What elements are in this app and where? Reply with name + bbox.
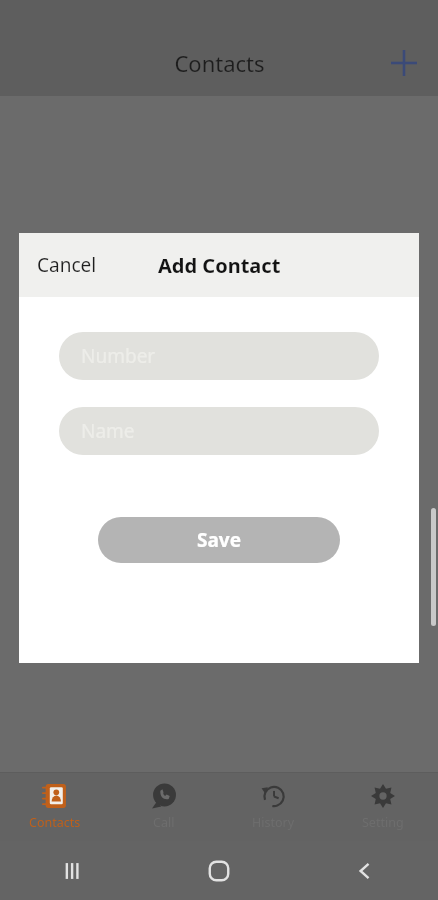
- staticText: Cancel: [37, 252, 97, 278]
- staticText: Name: [81, 418, 135, 444]
- button[interactable]: Home: [146, 841, 292, 900]
- button[interactable]: Number: [59, 332, 379, 380]
- button[interactable]: Cancel: [27, 244, 107, 286]
- button[interactable]: History: [218, 773, 328, 841]
- button[interactable]: Name: [59, 407, 379, 455]
- button[interactable]: Call: [109, 773, 218, 841]
- staticText: Add Contact: [158, 252, 281, 279]
- button[interactable]: Add contact: [380, 39, 428, 87]
- button[interactable]: Save: [98, 517, 340, 563]
- staticText: Number: [81, 343, 156, 369]
- staticText: Contacts: [174, 48, 265, 78]
- button[interactable]: Setting: [328, 773, 438, 841]
- button[interactable]: Recent apps: [0, 841, 146, 900]
- staticText: Setting: [362, 814, 404, 831]
- button[interactable]: Back: [292, 841, 438, 900]
- staticText: Call: [153, 814, 175, 831]
- button[interactable]: Contacts: [0, 773, 109, 841]
- staticText: Contacts: [29, 814, 81, 831]
- staticText: Save: [197, 527, 242, 553]
